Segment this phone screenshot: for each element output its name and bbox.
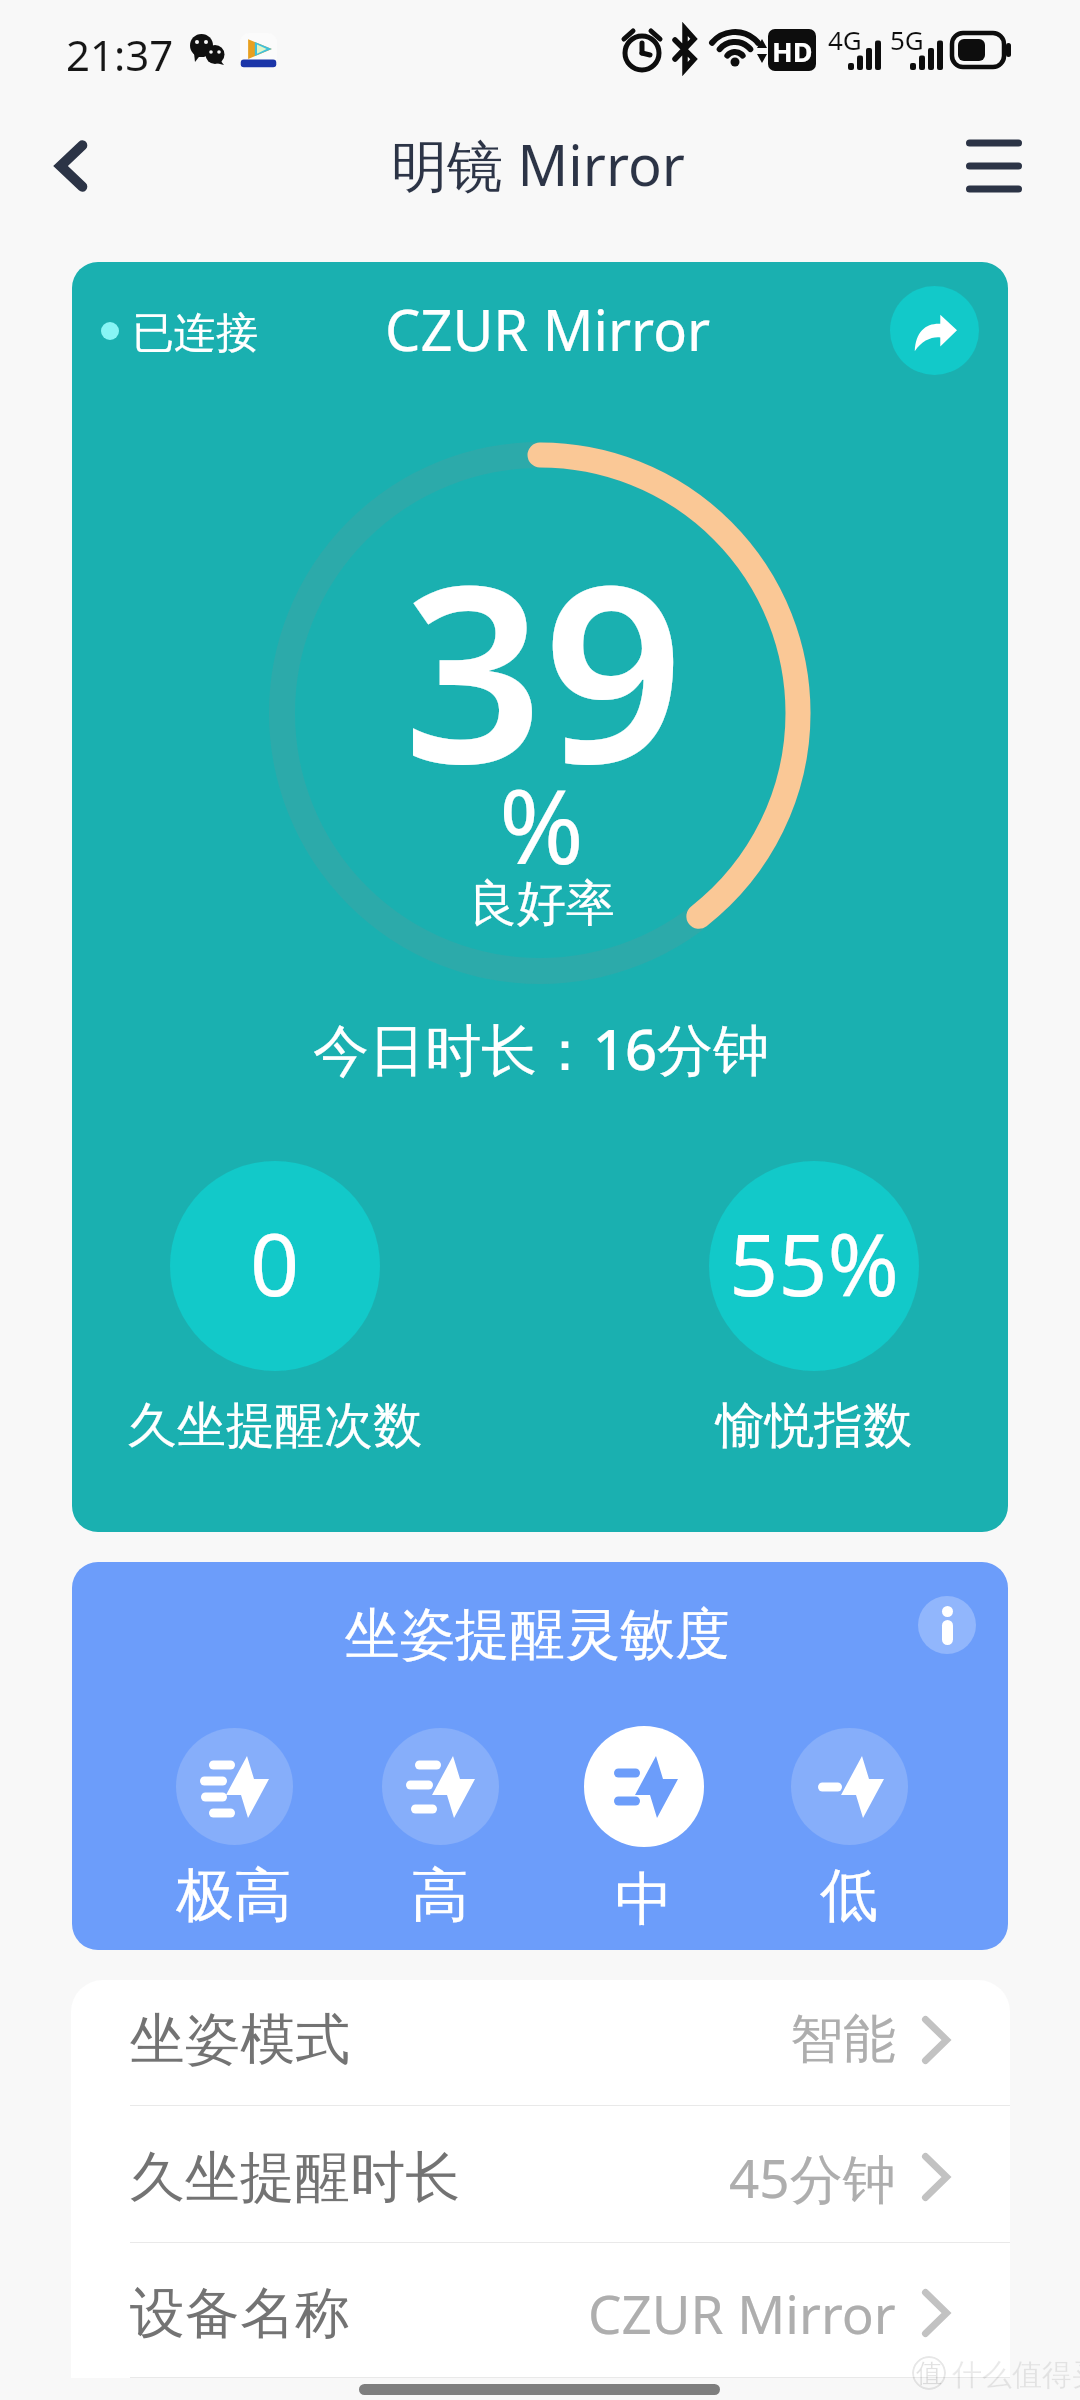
- staticText: 坐姿模式: [130, 2005, 350, 2074]
- button[interactable]: 坐姿模式: [71, 1980, 1010, 2106]
- staticText: %: [499, 755, 584, 894]
- staticText: 4G: [828, 22, 862, 57]
- staticText: 明镜 Mirror: [391, 126, 685, 202]
- staticText: 愉悦指数: [716, 1395, 912, 1457]
- button[interactable]: 设备名称: [71, 2243, 1010, 2378]
- staticText: 45分钟: [729, 2141, 896, 2213]
- staticText: 坐姿提醒灵敏度: [345, 1600, 730, 1669]
- button[interactable]: Menu: [934, 106, 1054, 226]
- staticText: 高: [411, 1859, 469, 1932]
- button[interactable]: 低: [789, 1728, 909, 1932]
- staticText: 良好率: [468, 873, 615, 935]
- button[interactable]: Info: [918, 1596, 976, 1654]
- staticText: 什么值得买: [952, 2356, 1080, 2394]
- staticText: 21:37: [66, 26, 174, 83]
- button[interactable]: Back: [10, 106, 130, 226]
- staticText: 55%: [729, 1204, 899, 1321]
- staticText: 极高: [176, 1859, 292, 1932]
- staticText: 5G: [890, 22, 924, 57]
- button[interactable]: Share: [890, 286, 979, 375]
- staticText: 0: [250, 1204, 300, 1321]
- staticText: 中: [615, 1863, 673, 1936]
- staticText: 久坐提醒时长: [130, 2143, 460, 2212]
- button[interactable]: 中: [584, 1726, 704, 1936]
- staticText: 设备名称: [130, 2279, 350, 2348]
- button[interactable]: 极高: [174, 1728, 294, 1932]
- staticText: 39: [403, 501, 684, 835]
- staticText: 智能: [790, 2006, 896, 2073]
- staticText: HD: [772, 33, 813, 70]
- button[interactable]: 高: [380, 1728, 500, 1932]
- staticText: CZUR Mirror: [385, 291, 711, 367]
- button[interactable]: 久坐提醒时长: [71, 2106, 1010, 2243]
- staticText: 已连接: [132, 307, 258, 360]
- staticText: 值: [916, 2357, 942, 2390]
- staticText: CZUR Mirror: [588, 2277, 896, 2349]
- staticText: 低: [820, 1859, 878, 1932]
- staticText: 久坐提醒次数: [128, 1395, 422, 1457]
- staticText: 今日时长：16分钟: [313, 1010, 770, 1086]
